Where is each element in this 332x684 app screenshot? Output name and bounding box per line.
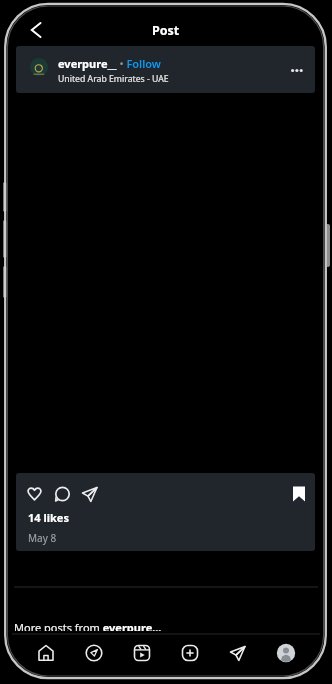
- staticText: Post: [152, 22, 180, 39]
- staticText: everpure__ • Follow: [58, 56, 162, 71]
- staticText: More posts from everpure...: [14, 620, 162, 635]
- staticText: 14 likes: [28, 510, 69, 525]
- staticText: United Arab Emirates - UAE: [58, 73, 169, 85]
- staticText: May 8: [28, 531, 57, 545]
